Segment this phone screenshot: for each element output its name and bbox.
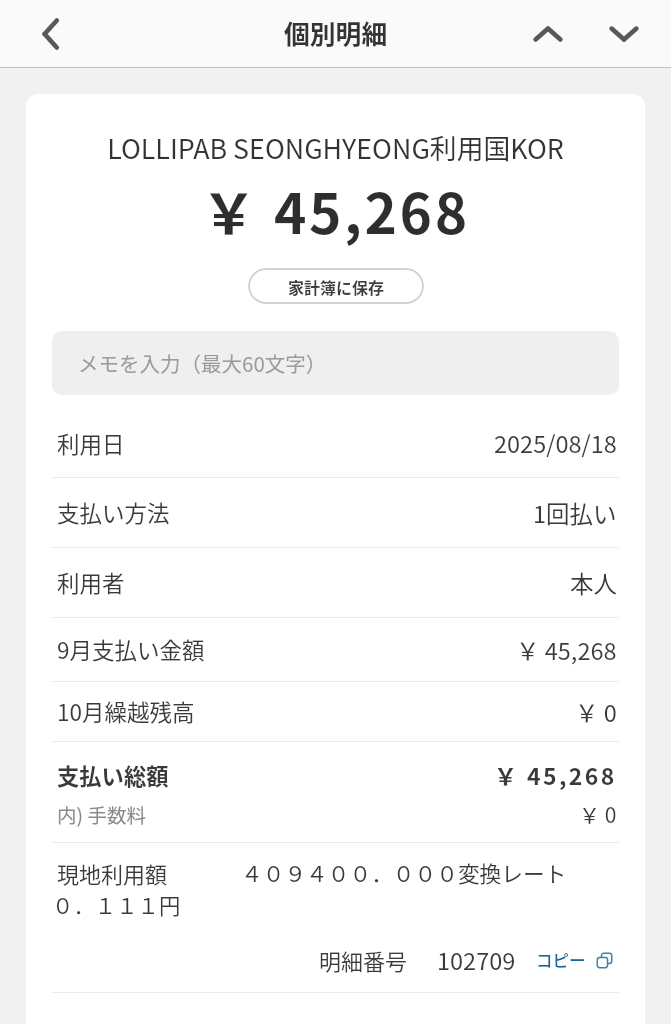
button[interactable]: 9月支払い金額 (52, 618, 619, 681)
staticText: 支払い方法 (57, 496, 170, 529)
staticText: 本人 (570, 566, 617, 600)
button[interactable]: Previous item (516, 2, 580, 66)
staticText: 102709 (437, 943, 516, 977)
staticText: 内) 手数料 (57, 800, 146, 828)
staticText: 2025/08/18 (494, 426, 617, 460)
staticText: ￥ 0 (575, 695, 617, 729)
button[interactable]: 支払い総額 (52, 742, 619, 843)
staticText: ￥ 0 (579, 799, 617, 829)
button[interactable]: 利用者 (52, 548, 619, 617)
button[interactable]: Back (19, 2, 83, 66)
staticText: ４０９４００．０００変換レート (241, 857, 567, 888)
staticText: コピー (536, 948, 586, 972)
staticText: 利用者 (57, 566, 125, 599)
staticText: ￥ 45,268 (26, 170, 645, 250)
staticText: 現地利用額 (57, 857, 168, 889)
button[interactable]: 家計簿に保存 (248, 268, 424, 304)
staticText: ０．１１１円 (52, 889, 181, 920)
staticText: 個別明細 (284, 14, 388, 51)
button[interactable]: Next item (592, 2, 656, 66)
staticText: 1回払い (533, 496, 617, 530)
staticText: ￥ 45,268 (494, 758, 617, 791)
staticText: メモを入力（最大60文字） (78, 348, 327, 378)
staticText: 支払い総額 (57, 759, 169, 791)
button[interactable]: 10月繰越残高 (52, 682, 619, 741)
staticText: 利用日 (57, 427, 125, 460)
staticText: 10月繰越残高 (57, 695, 195, 728)
staticText: 明細番号 (319, 944, 408, 976)
button[interactable]: 現地利用額 (52, 857, 619, 920)
staticText: LOLLIPAB SEONGHYEONG利用国KOR (26, 128, 645, 167)
staticText: 9月支払い金額 (57, 633, 205, 666)
button[interactable]: コピー (536, 948, 614, 972)
button[interactable]: 利用日 (52, 409, 619, 477)
button[interactable]: 支払い方法 (52, 478, 619, 547)
staticText: 家計簿に保存 (288, 275, 385, 298)
button[interactable]: メモを入力（最大60文字） (52, 331, 619, 395)
staticText: ￥ 45,268 (516, 633, 617, 667)
